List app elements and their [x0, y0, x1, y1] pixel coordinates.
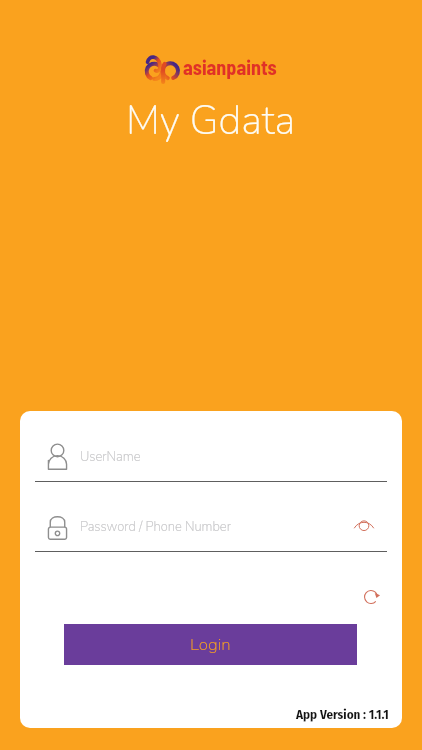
- button[interactable]: Refresh: [356, 582, 386, 612]
- button[interactable]: UserName: [47, 442, 141, 472]
- staticText: App Version : 1.1.1: [296, 707, 389, 723]
- staticText: Password / Phone Number: [80, 518, 231, 536]
- staticText: asianpaints: [183, 55, 277, 79]
- staticText: UserName: [80, 448, 141, 466]
- button[interactable]: Password / Phone Number: [47, 512, 231, 542]
- button[interactable]: Login: [64, 624, 357, 665]
- staticText: Login: [190, 633, 231, 656]
- button[interactable]: Show password: [349, 510, 379, 540]
- staticText: My Gdata: [126, 94, 296, 149]
